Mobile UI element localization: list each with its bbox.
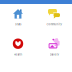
button[interactable]: Gallery (36, 34, 72, 64)
button[interactable]: Health (0, 34, 36, 64)
staticText: Community (46, 23, 61, 26)
button[interactable]: Community (36, 4, 72, 34)
staticText: Health (13, 53, 22, 56)
staticText: Gallery (49, 53, 58, 56)
staticText: Stats (15, 23, 21, 26)
button[interactable]: Stats (0, 4, 36, 34)
